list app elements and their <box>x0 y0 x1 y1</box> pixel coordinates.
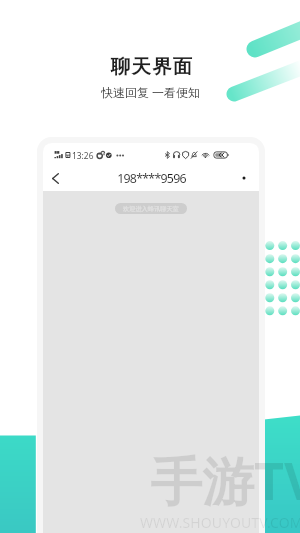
button[interactable]: Back <box>44 167 66 189</box>
button[interactable]: More options <box>237 171 251 185</box>
staticText: 198****9596 <box>117 170 186 187</box>
staticText: 快速回复 一看便知 <box>101 84 201 100</box>
staticText: 欢迎进入蜂讯聊天室 <box>123 205 179 213</box>
button[interactable]: 欢迎进入蜂讯聊天室 <box>123 203 179 214</box>
staticText: 13:26 <box>72 150 94 161</box>
staticText: WWW.SHOUYOUTV.COM <box>140 513 300 532</box>
staticText: 手游TV <box>150 444 300 515</box>
staticText: 聊天界面 <box>111 54 194 78</box>
